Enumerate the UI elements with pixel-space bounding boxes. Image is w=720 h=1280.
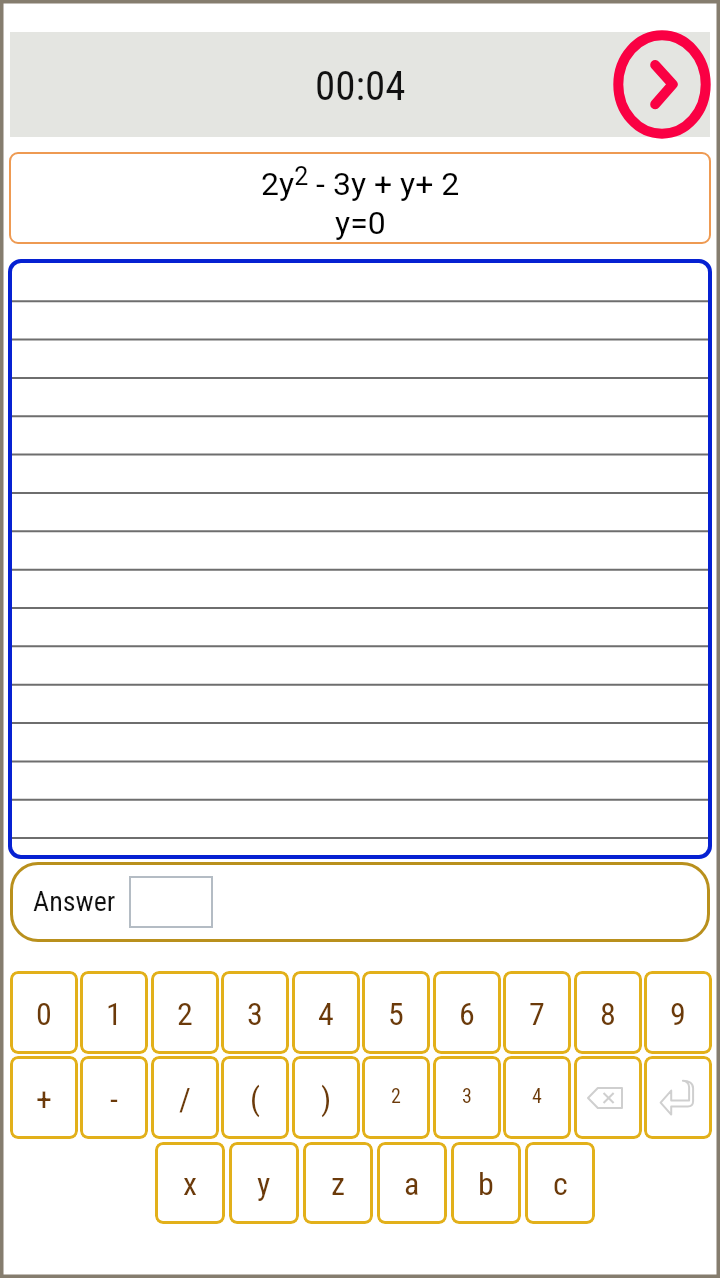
button[interactable]: 1 bbox=[80, 971, 148, 1054]
button[interactable]: + bbox=[10, 1056, 78, 1139]
staticText: 7 bbox=[529, 995, 545, 1033]
staticText: 2y2 - 3y + y+ 2 bbox=[261, 162, 460, 203]
staticText: 0 bbox=[36, 995, 52, 1033]
staticText: 4 bbox=[318, 995, 334, 1033]
button[interactable]: a bbox=[377, 1142, 447, 1224]
button[interactable]: Backspace bbox=[574, 1056, 642, 1139]
staticText: y=0 bbox=[335, 204, 386, 242]
button[interactable]: 9 bbox=[644, 971, 712, 1054]
staticText: 00:04 bbox=[315, 62, 406, 110]
button[interactable]: 3 bbox=[221, 971, 289, 1054]
button[interactable]: 7 bbox=[503, 971, 571, 1054]
staticText: z bbox=[331, 1165, 346, 1203]
staticText: 4 bbox=[532, 1084, 542, 1107]
staticText: ( bbox=[250, 1080, 261, 1118]
button[interactable]: 4 bbox=[503, 1056, 571, 1139]
button[interactable]: Next question bbox=[607, 32, 717, 137]
button[interactable]: b bbox=[451, 1142, 521, 1224]
button[interactable]: ( bbox=[221, 1056, 289, 1139]
button[interactable]: / bbox=[151, 1056, 219, 1139]
button[interactable]: 0 bbox=[10, 971, 78, 1054]
button[interactable]: 6 bbox=[433, 971, 501, 1054]
button[interactable]: z bbox=[303, 1142, 373, 1224]
staticText: 9 bbox=[670, 995, 686, 1033]
staticText: - bbox=[110, 1080, 118, 1118]
button[interactable]: 3 bbox=[433, 1056, 501, 1139]
staticText: ) bbox=[321, 1080, 332, 1118]
staticText: 8 bbox=[600, 995, 616, 1033]
staticText: 1 bbox=[106, 995, 122, 1033]
staticText: Answer bbox=[33, 885, 116, 918]
button[interactable]: 5 bbox=[362, 971, 430, 1054]
staticText: 6 bbox=[459, 995, 475, 1033]
button[interactable]: Enter bbox=[644, 1056, 712, 1139]
button[interactable]: 2 bbox=[362, 1056, 430, 1139]
staticText: / bbox=[179, 1080, 191, 1118]
staticText: 3 bbox=[462, 1084, 472, 1107]
button[interactable]: ) bbox=[292, 1056, 360, 1139]
staticText: + bbox=[36, 1080, 52, 1118]
staticText: y bbox=[257, 1165, 271, 1203]
staticText: c bbox=[553, 1165, 568, 1203]
button[interactable]: c bbox=[525, 1142, 595, 1224]
staticText: a bbox=[404, 1165, 420, 1203]
staticText: b bbox=[478, 1165, 494, 1203]
button[interactable]: y bbox=[229, 1142, 299, 1224]
staticText: 2 bbox=[391, 1084, 401, 1107]
button[interactable]: 8 bbox=[574, 971, 642, 1054]
staticText: x bbox=[183, 1165, 198, 1203]
staticText: 5 bbox=[388, 995, 404, 1033]
button[interactable]: x bbox=[155, 1142, 225, 1224]
button[interactable]: 2 bbox=[151, 971, 219, 1054]
staticText: 2 bbox=[177, 995, 193, 1033]
button[interactable]: - bbox=[80, 1056, 148, 1139]
staticText: 3 bbox=[247, 995, 263, 1033]
button[interactable]: 4 bbox=[292, 971, 360, 1054]
